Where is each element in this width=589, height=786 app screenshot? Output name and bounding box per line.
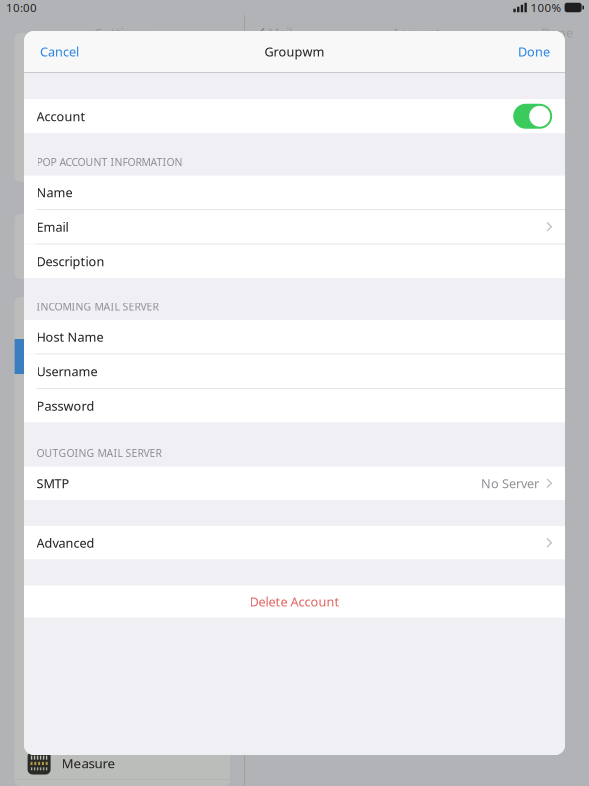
staticText: Name bbox=[37, 184, 73, 201]
staticText: Username bbox=[37, 363, 98, 380]
button[interactable]: Username bbox=[24, 354, 565, 388]
staticText: OUTGOING MAIL SERVER bbox=[37, 446, 162, 460]
staticText: Done bbox=[518, 43, 550, 60]
button[interactable]: Email bbox=[24, 210, 565, 243]
staticText: Groupwm bbox=[264, 43, 324, 60]
staticText: INCOMING MAIL SERVER bbox=[37, 299, 159, 314]
staticText: Mail bbox=[268, 24, 292, 41]
button[interactable]: Account bbox=[24, 99, 565, 133]
staticText: Host Name bbox=[37, 328, 104, 345]
staticText: Done bbox=[541, 24, 573, 41]
staticText: Measure bbox=[62, 754, 116, 772]
button[interactable]: Description bbox=[24, 244, 565, 278]
button[interactable]: Advanced bbox=[24, 526, 565, 559]
staticText: 100% bbox=[531, 0, 562, 15]
staticText: Password bbox=[37, 397, 95, 414]
button[interactable]: Password bbox=[24, 389, 565, 422]
staticText: Settings bbox=[94, 23, 149, 43]
staticText: No Server bbox=[481, 475, 539, 492]
staticText: Email bbox=[37, 218, 69, 235]
staticText: Advanced bbox=[37, 534, 95, 551]
staticText: Description bbox=[37, 253, 105, 270]
staticText: Delete Account bbox=[249, 593, 339, 610]
staticText: Account bbox=[392, 24, 441, 41]
button[interactable]: Done bbox=[508, 31, 565, 72]
button[interactable]: Cancel bbox=[24, 31, 89, 72]
staticText: Cancel bbox=[40, 43, 79, 60]
button[interactable]: Host Name bbox=[24, 320, 565, 353]
staticText: SMTP bbox=[37, 475, 70, 492]
staticText: Account bbox=[37, 108, 86, 125]
button[interactable]: SMTP bbox=[24, 466, 565, 500]
staticText: 10:00 bbox=[6, 0, 37, 15]
button[interactable]: Measure bbox=[15, 747, 230, 779]
button[interactable]: Delete Account bbox=[24, 585, 565, 617]
staticText: POP ACCOUNT INFORMATION bbox=[37, 155, 183, 169]
button[interactable]: Name bbox=[24, 175, 565, 209]
